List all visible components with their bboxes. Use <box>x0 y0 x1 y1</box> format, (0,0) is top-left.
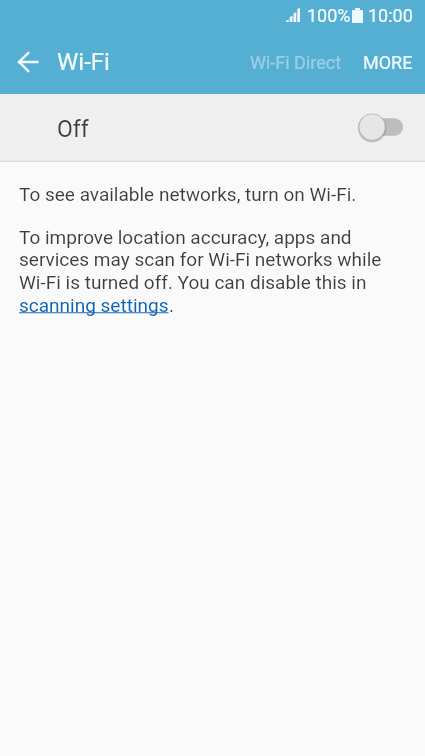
button[interactable]: Off <box>0 94 425 160</box>
staticText: scanning settings <box>19 294 169 316</box>
button[interactable]: scanning settings <box>19 294 169 316</box>
staticText: To see available networks, turn on Wi-Fi… <box>19 183 357 205</box>
staticText: MORE <box>363 52 413 73</box>
other: Battery full <box>352 8 363 23</box>
staticText: . <box>169 294 175 316</box>
staticText: To improve location accuracy, apps and s… <box>19 226 382 294</box>
staticText: Wi-Fi Direct <box>250 52 342 73</box>
button[interactable]: MORE <box>348 38 425 87</box>
other: Mobile signal: full <box>286 8 300 23</box>
staticText: 10:00 <box>368 5 413 26</box>
staticText: Off <box>57 116 89 143</box>
button[interactable]: Wi-Fi Direct <box>244 38 348 87</box>
staticText: 100% <box>307 5 351 26</box>
staticText: Wi-Fi <box>57 48 110 76</box>
button[interactable]: Navigate up <box>0 30 57 94</box>
